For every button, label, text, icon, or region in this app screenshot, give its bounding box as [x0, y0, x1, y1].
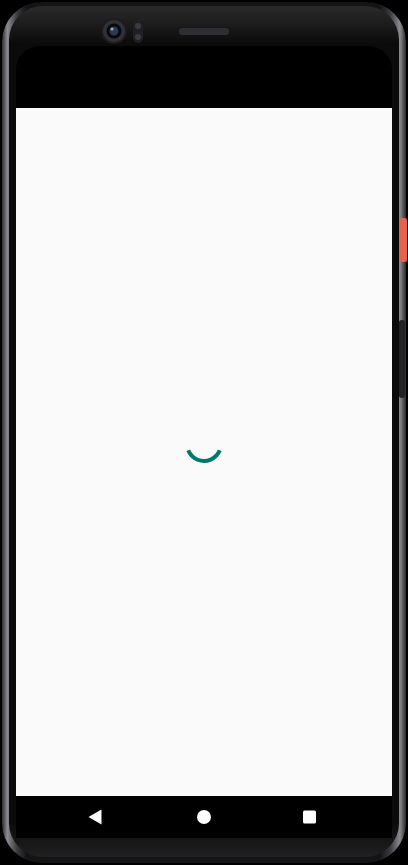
button[interactable]: Recent apps — [295, 796, 337, 838]
button[interactable]: Home — [183, 796, 225, 838]
button[interactable]: Back — [71, 796, 113, 838]
other: Loading — [185, 425, 223, 463]
